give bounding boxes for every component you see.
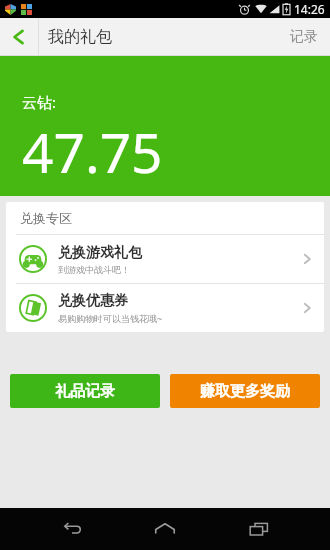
button[interactable]: 记录 xyxy=(278,18,330,56)
staticText: 赚取更多奖励 xyxy=(200,382,290,401)
staticText: 47.75 xyxy=(22,114,163,189)
staticText: 14:26 xyxy=(294,1,325,17)
staticText: 兑换优惠券 xyxy=(58,292,128,310)
staticText: 易购购物时可以当钱花哦~ xyxy=(58,312,163,324)
button[interactable]: 兑换优惠券 xyxy=(6,284,324,332)
staticText: 记录 xyxy=(290,28,318,46)
button[interactable]: Back xyxy=(0,18,38,56)
staticText: 云钻: xyxy=(22,92,57,112)
button[interactable]: 兑换游戏礼包 xyxy=(6,235,324,283)
button[interactable]: Recent apps xyxy=(237,508,281,550)
staticText: 礼品记录 xyxy=(55,382,115,401)
staticText: 兑换专区 xyxy=(20,210,72,226)
staticText: 到游戏中战斗吧！ xyxy=(58,264,130,275)
staticText: 兑换游戏礼包 xyxy=(58,244,142,262)
staticText: 我的礼包 xyxy=(48,27,112,47)
button[interactable]: 赚取更多奖励 xyxy=(170,374,320,408)
button[interactable]: 礼品记录 xyxy=(10,374,160,408)
button[interactable]: Home xyxy=(143,508,187,550)
button[interactable]: Back xyxy=(50,508,94,550)
